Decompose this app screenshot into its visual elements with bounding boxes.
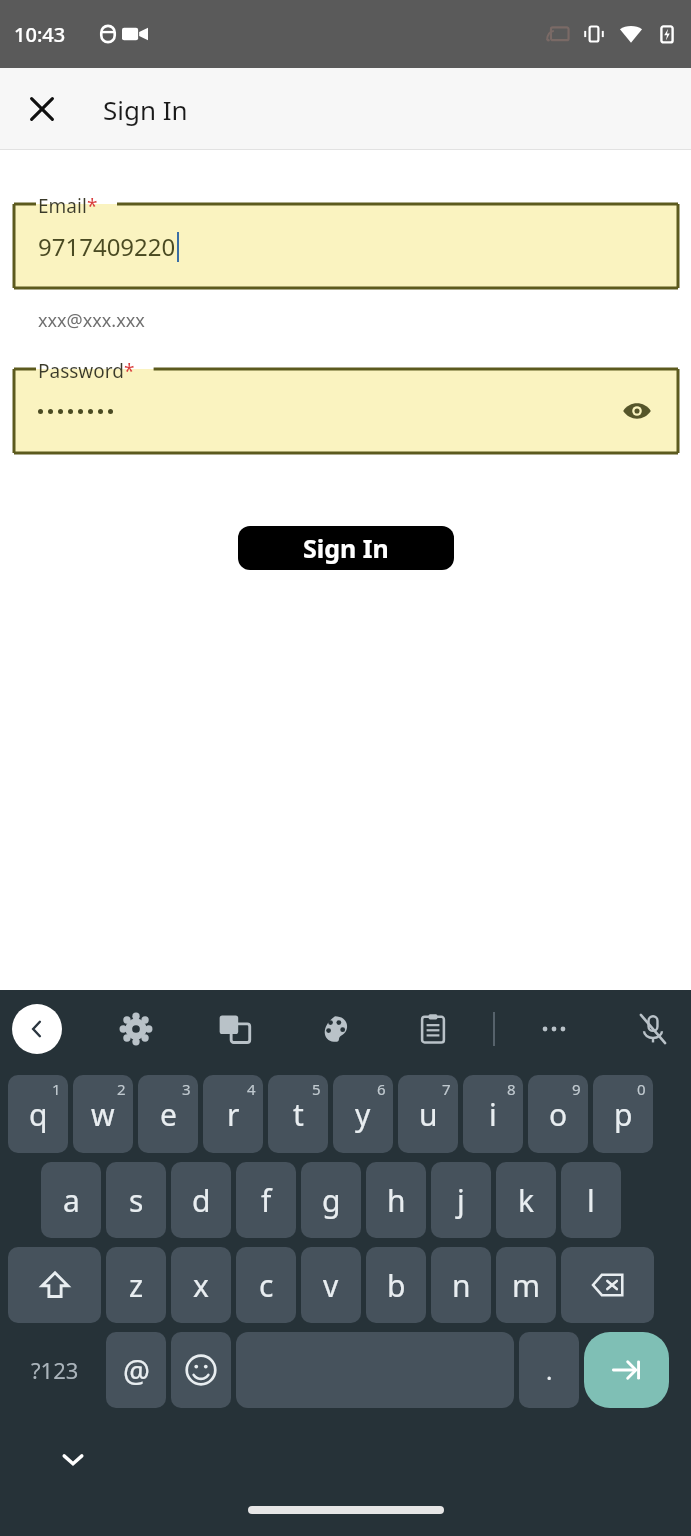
staticText: xxx@xxx.xxx — [38, 308, 145, 333]
staticText: w — [91, 1094, 115, 1135]
button[interactable]: g — [301, 1162, 361, 1238]
button[interactable]: Hide keyboard — [50, 1436, 96, 1482]
staticText: t — [293, 1094, 304, 1135]
button[interactable]: j — [431, 1162, 491, 1238]
staticText: 0 — [637, 1079, 646, 1099]
button[interactable]: Shift — [8, 1247, 101, 1323]
staticText: @ — [123, 1350, 150, 1391]
staticText: q — [29, 1094, 48, 1135]
button[interactable]: Enter — [584, 1332, 669, 1408]
button[interactable]: p — [593, 1075, 653, 1153]
staticText: r — [227, 1094, 240, 1135]
button[interactable]: @ — [106, 1332, 166, 1408]
staticText: n — [452, 1265, 471, 1306]
button[interactable]: Show password — [616, 390, 658, 432]
button[interactable]: Back — [12, 1004, 62, 1054]
staticText: s — [129, 1180, 144, 1221]
button[interactable]: u — [398, 1075, 458, 1153]
button[interactable]: y — [333, 1075, 393, 1153]
staticText: 3 — [182, 1079, 191, 1099]
button[interactable]: Emoji — [171, 1332, 231, 1408]
button[interactable]: b — [366, 1247, 426, 1323]
button[interactable]: ?123 — [8, 1332, 101, 1408]
staticText: Email — [38, 193, 87, 219]
staticText: g — [322, 1180, 341, 1221]
button[interactable]: o — [528, 1075, 588, 1153]
staticText: 9 — [572, 1079, 581, 1099]
button[interactable]: l — [561, 1162, 621, 1238]
staticText: d — [192, 1180, 211, 1221]
staticText: m — [512, 1265, 541, 1306]
staticText: y — [355, 1094, 371, 1135]
button[interactable]: Email — [14, 204, 678, 288]
button[interactable]: Translate — [210, 1004, 260, 1054]
staticText: 4 — [247, 1079, 256, 1099]
button[interactable]: k — [496, 1162, 556, 1238]
button[interactable]: s — [106, 1162, 166, 1238]
button[interactable]: Password — [14, 369, 678, 453]
button[interactable]: w — [73, 1075, 133, 1153]
staticText: a — [63, 1180, 80, 1221]
button[interactable]: Voice input off — [628, 1004, 678, 1054]
button[interactable]: Settings — [111, 1004, 161, 1054]
button[interactable]: Clipboard — [408, 1004, 458, 1054]
staticText: * — [87, 193, 98, 219]
staticText: k — [518, 1180, 535, 1221]
staticText: 9717409220 — [38, 230, 176, 263]
staticText: ?123 — [31, 1355, 79, 1385]
staticText: . — [546, 1354, 553, 1387]
button[interactable]: v — [301, 1247, 361, 1323]
staticText: 7 — [442, 1079, 451, 1099]
button[interactable]: More options — [529, 1004, 579, 1054]
staticText: Password — [38, 358, 124, 384]
staticText: f — [261, 1180, 272, 1221]
staticText: * — [124, 358, 135, 384]
button[interactable]: m — [496, 1247, 556, 1323]
staticText: i — [489, 1094, 497, 1135]
button[interactable]: n — [431, 1247, 491, 1323]
staticText: p — [614, 1094, 633, 1135]
button[interactable]: x — [171, 1247, 231, 1323]
staticText: 6 — [377, 1079, 386, 1099]
staticText: x — [193, 1265, 209, 1306]
button[interactable]: c — [236, 1247, 296, 1323]
staticText: v — [323, 1265, 339, 1306]
staticText: c — [259, 1265, 274, 1306]
button[interactable]: i — [463, 1075, 523, 1153]
staticText: b — [387, 1265, 406, 1306]
button[interactable]: Backspace — [561, 1247, 654, 1323]
button[interactable]: e — [138, 1075, 198, 1153]
staticText: Sign In — [103, 92, 188, 127]
staticText: Sign In — [303, 531, 389, 565]
button[interactable]: Sign In — [238, 526, 454, 570]
staticText: 10:43 — [14, 21, 66, 48]
button[interactable]: t — [268, 1075, 328, 1153]
button[interactable]: q — [8, 1075, 68, 1153]
button[interactable]: . — [519, 1332, 579, 1408]
button[interactable]: a — [41, 1162, 101, 1238]
staticText: l — [587, 1180, 595, 1221]
button[interactable]: h — [366, 1162, 426, 1238]
staticText: j — [457, 1180, 465, 1221]
staticText: o — [549, 1094, 568, 1135]
button[interactable]: Close — [18, 85, 66, 133]
staticText: u — [419, 1094, 438, 1135]
staticText: 8 — [507, 1079, 516, 1099]
staticText: 1 — [52, 1079, 61, 1099]
button[interactable]: f — [236, 1162, 296, 1238]
staticText: h — [387, 1180, 406, 1221]
button[interactable]: z — [106, 1247, 166, 1323]
staticText: 5 — [312, 1079, 321, 1099]
button[interactable]: d — [171, 1162, 231, 1238]
staticText: z — [129, 1265, 144, 1306]
button[interactable]: Themes — [310, 1004, 360, 1054]
staticText: 2 — [117, 1079, 126, 1099]
button[interactable]: r — [203, 1075, 263, 1153]
staticText: e — [160, 1094, 177, 1135]
